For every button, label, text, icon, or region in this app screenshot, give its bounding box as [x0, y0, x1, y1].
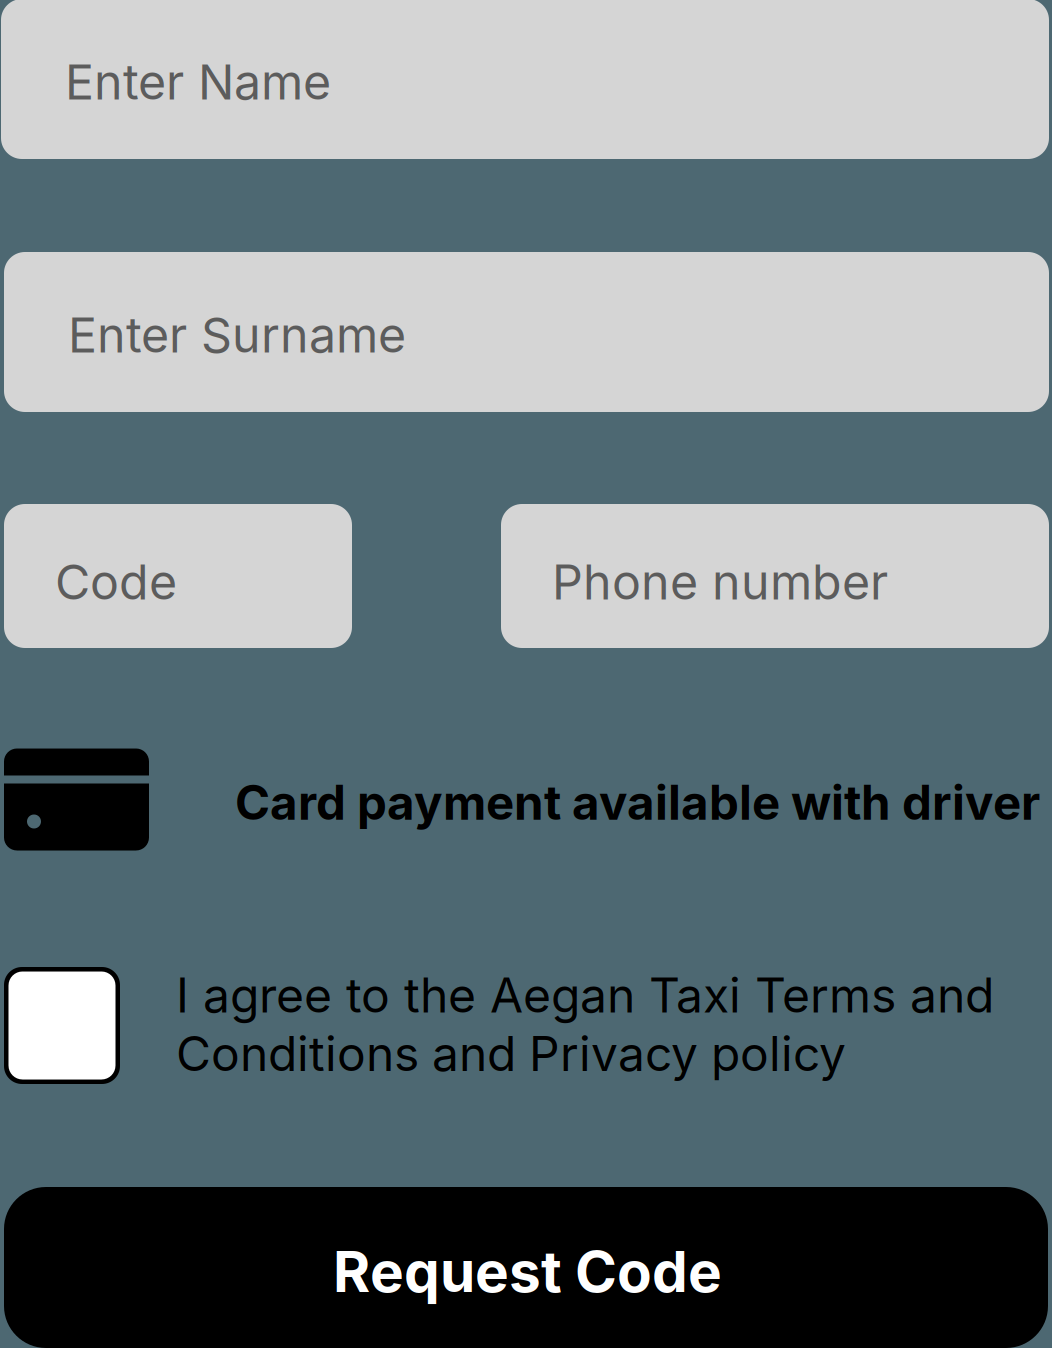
button[interactable]: Enter Name	[1, 0, 1049, 159]
staticText: Enter Surname	[68, 306, 406, 364]
staticText: Conditions and Privacy policy	[176, 1025, 846, 1082]
staticText: Enter Name	[65, 53, 331, 111]
staticText: Request Code	[333, 1237, 722, 1306]
button[interactable]: Phone number	[501, 504, 1049, 648]
staticText: Card payment available with driver	[235, 774, 1040, 831]
button[interactable]: I agree to the Aegan Taxi Terms and	[4, 967, 1048, 1092]
staticText: Phone number	[552, 553, 888, 611]
staticText: Code	[55, 553, 177, 611]
button[interactable]: Enter Surname	[4, 252, 1049, 412]
button[interactable]: Request Code	[4, 1187, 1048, 1348]
button[interactable]: Code	[4, 504, 352, 648]
staticText: I agree to the Aegan Taxi Terms and	[176, 966, 994, 1024]
